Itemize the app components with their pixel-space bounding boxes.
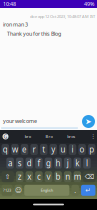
staticText: f [37, 158, 40, 168]
staticText: l [86, 158, 88, 168]
staticText: e [22, 144, 27, 155]
button[interactable]: Send [81, 114, 96, 129]
button[interactable]: l [83, 158, 91, 169]
staticText: your welcome [3, 117, 37, 125]
button[interactable]: a [6, 158, 14, 169]
staticText: x [27, 171, 31, 182]
button[interactable]: f [35, 158, 43, 169]
staticText: k [75, 158, 79, 168]
staticText: r [33, 144, 36, 155]
button[interactable]: j [64, 158, 71, 169]
button[interactable]: Google search [1, 132, 10, 141]
staticText: ?123 [3, 188, 11, 193]
staticText: ➤ [85, 117, 92, 126]
staticText: 10:48 [3, 0, 16, 8]
button[interactable]: k [74, 158, 81, 169]
button[interactable]: ⌫ [83, 171, 95, 182]
staticText: iron man 3 [3, 21, 28, 28]
staticText: bros [67, 134, 75, 139]
button[interactable]: x [26, 171, 33, 182]
button[interactable]: s [16, 158, 23, 169]
button[interactable]: c [35, 171, 43, 182]
staticText: . [74, 186, 76, 195]
staticText: dice app 12 Oct 2023, 10:48:07 AM IST [30, 14, 95, 19]
staticText: English [41, 188, 53, 193]
staticText: bro [25, 134, 31, 139]
staticText: ↵ [85, 186, 91, 194]
button[interactable]: More options [90, 132, 96, 141]
button[interactable]: p [88, 144, 95, 155]
staticText: o [80, 144, 85, 155]
staticText: Thank you for this Blog [7, 30, 61, 37]
button[interactable]: w [11, 144, 19, 155]
button[interactable]: v [45, 171, 52, 182]
staticText: a [8, 158, 12, 168]
staticText: y [51, 144, 55, 155]
button[interactable]: n [64, 171, 71, 182]
button[interactable]: u [59, 144, 67, 155]
staticText: i [71, 144, 73, 155]
staticText: ⇧ [5, 173, 11, 180]
button[interactable]: y [49, 144, 57, 155]
staticText: z [18, 171, 22, 182]
staticText: G [3, 133, 7, 140]
button[interactable]: m [74, 171, 81, 182]
button[interactable]: ↵ [81, 185, 95, 196]
staticText: ☺ [15, 186, 22, 194]
staticText: u [60, 144, 65, 155]
staticText: t [42, 144, 45, 155]
staticText: q [3, 144, 8, 155]
button[interactable]: g [45, 158, 52, 169]
button[interactable]: ⇧ [2, 171, 14, 182]
button[interactable]: . [71, 185, 79, 196]
button[interactable]: English [24, 185, 69, 196]
staticText: v [46, 171, 50, 182]
staticText: b [56, 171, 61, 182]
staticText: c [37, 171, 41, 182]
button[interactable]: z [16, 171, 23, 182]
staticText: Bro [45, 134, 52, 139]
button[interactable]: e [21, 144, 28, 155]
staticText: n [65, 171, 70, 182]
button[interactable]: r [30, 144, 38, 155]
button[interactable]: q [1, 144, 9, 155]
staticText: g [46, 158, 51, 168]
button[interactable]: d [26, 158, 33, 169]
staticText: d [27, 158, 32, 168]
button[interactable]: h [54, 158, 62, 169]
staticText: w [12, 144, 18, 155]
staticText: m [74, 171, 81, 182]
button[interactable]: ☺ [15, 185, 22, 196]
staticText: ⌫ [85, 173, 94, 180]
button[interactable]: i [69, 144, 76, 155]
button[interactable]: o [78, 144, 86, 155]
staticText: h [56, 158, 61, 168]
staticText: ⋮ [90, 133, 95, 140]
staticText: s [18, 158, 22, 168]
staticText: p [89, 144, 94, 155]
staticText: 49% [84, 0, 94, 8]
button[interactable]: b [54, 171, 62, 182]
button[interactable]: t [40, 144, 47, 155]
staticText: j [67, 158, 69, 168]
button[interactable]: ?123 [1, 185, 12, 196]
